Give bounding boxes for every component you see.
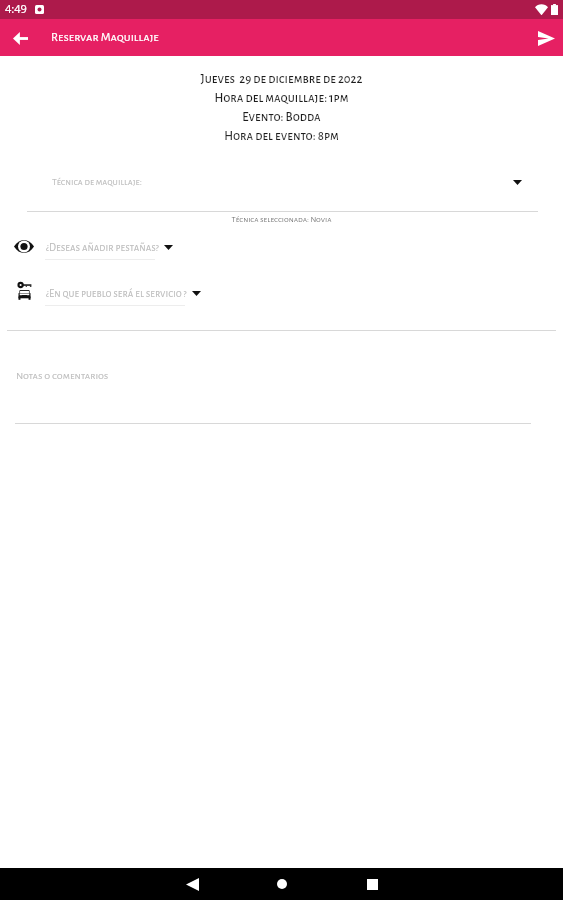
staticText: Evento: Bodda bbox=[0, 111, 563, 130]
button[interactable]: Técnica de maquillaje: bbox=[0, 166, 563, 198]
button[interactable]: ¿En que pueblo será el servicio ? bbox=[46, 283, 201, 303]
staticText: ¿En que pueblo será el servicio ? bbox=[46, 288, 187, 299]
staticText: Reservar Maquillaje bbox=[51, 31, 159, 44]
staticText: Hora del maquillaje: 1pm bbox=[0, 92, 563, 111]
button[interactable]: Send bbox=[532, 24, 560, 52]
staticText: 4:49 bbox=[5, 1, 27, 16]
staticText: Notas o comentarios bbox=[16, 371, 109, 382]
button[interactable]: Notas o comentarios bbox=[15, 355, 531, 424]
button[interactable]: Recent apps bbox=[327, 868, 417, 900]
staticText: ¿Deseas añadir pestañas? bbox=[46, 242, 159, 253]
button[interactable]: Back bbox=[147, 868, 237, 900]
button[interactable]: ¿Deseas añadir pestañas? bbox=[46, 237, 173, 257]
button[interactable]: Pueblo bbox=[12, 280, 36, 304]
staticText: Jueves 29 de diciembre de 2022 bbox=[0, 73, 563, 92]
staticText: Hora del evento: 8pm bbox=[0, 130, 563, 149]
button[interactable]: Pestañas bbox=[12, 234, 36, 258]
staticText: Técnica seleccionada: Novia bbox=[0, 215, 563, 224]
staticText: Técnica de maquillaje: bbox=[52, 177, 142, 187]
button[interactable]: Back bbox=[6, 24, 34, 52]
button[interactable]: Home bbox=[237, 868, 327, 900]
